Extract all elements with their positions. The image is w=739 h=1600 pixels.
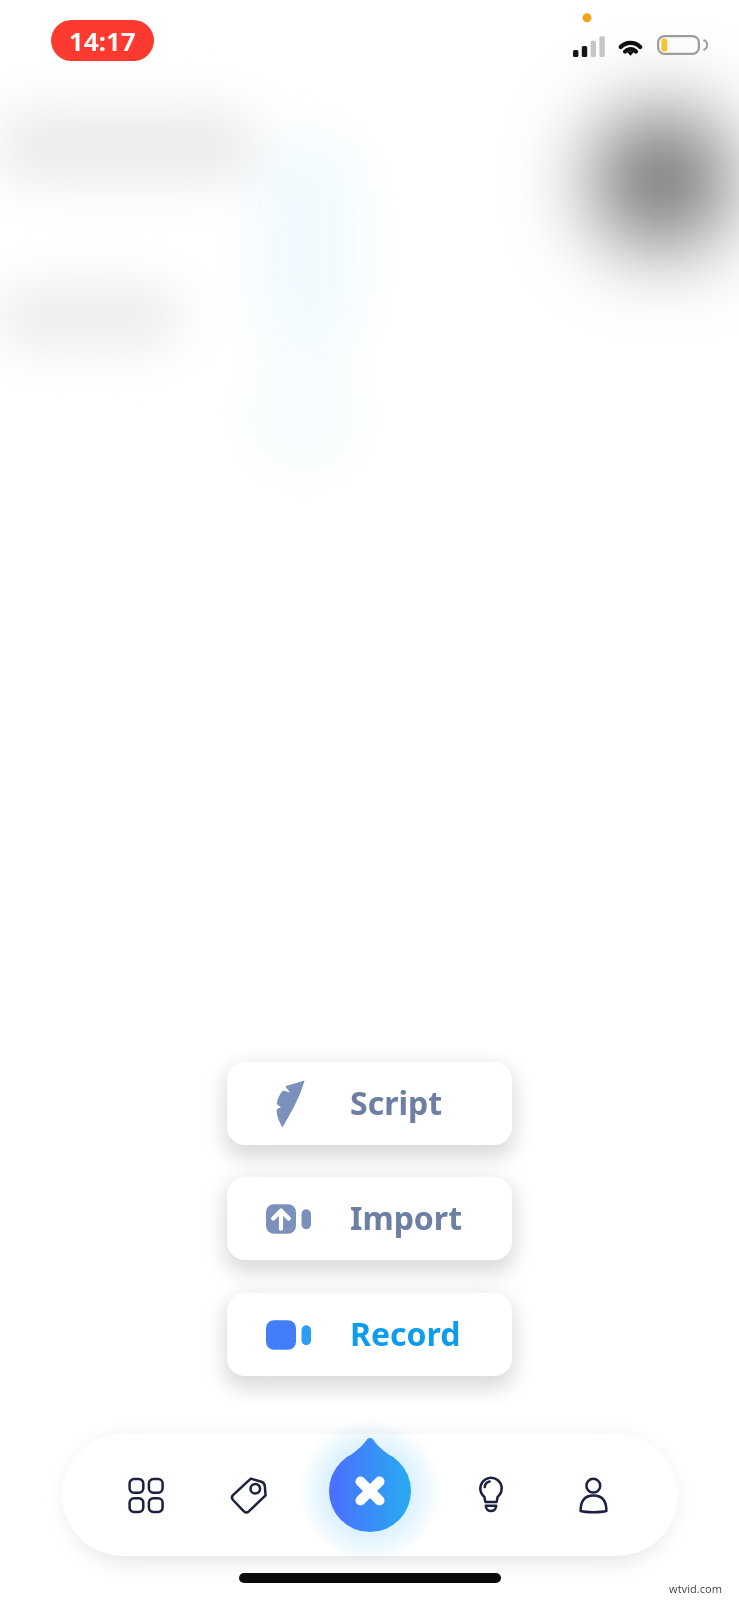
button[interactable]: Close [329,1450,411,1532]
staticText: Record [350,1312,461,1356]
button[interactable]: Ideas [463,1466,521,1524]
staticText: 14:17 [69,23,136,58]
button[interactable]: Dashboard [117,1466,175,1524]
staticText: wtvid.com [669,1581,722,1596]
button[interactable]: Record [227,1293,512,1376]
button[interactable]: Script [227,1062,512,1145]
staticText: Script [350,1081,443,1125]
staticText: Import [350,1196,463,1240]
button[interactable]: Tags [219,1466,277,1524]
button[interactable]: Import [227,1177,512,1260]
button[interactable]: Profile [565,1466,623,1524]
